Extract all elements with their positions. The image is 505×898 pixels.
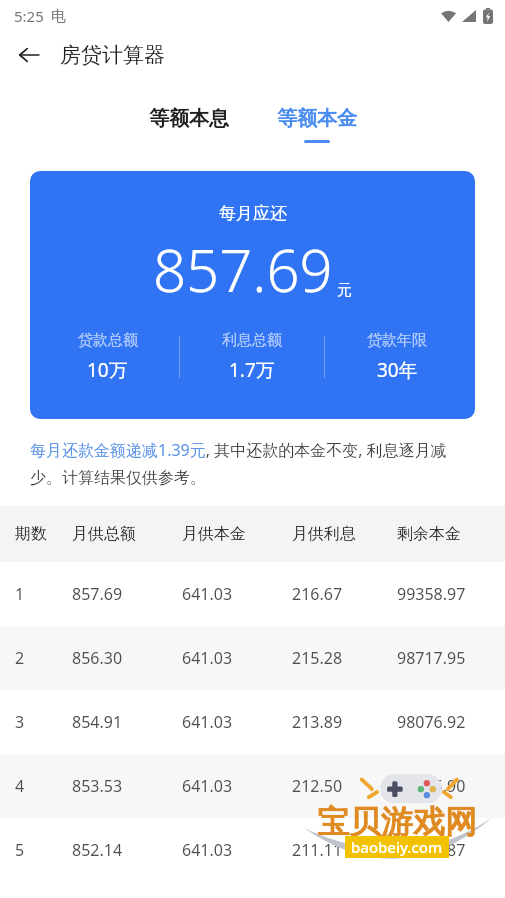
staticText: 贷款年限 [367, 331, 427, 350]
staticText: 212.50 [292, 775, 397, 797]
staticText: 857.69 [153, 230, 333, 309]
staticText: 99358.97 [397, 583, 505, 605]
staticText: 1.7万 [229, 357, 275, 383]
staticText: 电 [51, 7, 66, 26]
staticText: baobeiy.com [351, 837, 443, 857]
staticText: 房贷计算器 [60, 42, 165, 68]
staticText: 10万 [87, 357, 128, 383]
staticText: 月供利息 [292, 524, 397, 544]
staticText: 30年 [377, 357, 418, 383]
staticText: 856.30 [72, 647, 182, 669]
staticText: 98717.95 [397, 647, 505, 669]
staticText: 213.89 [292, 711, 397, 733]
button[interactable]: 等额本息 [141, 104, 237, 145]
button[interactable]: 4 [0, 754, 505, 818]
staticText: 211.11 [292, 839, 397, 861]
staticText: 5:25 [14, 6, 44, 26]
staticText: 98076.92 [397, 711, 505, 733]
staticText: 2 [15, 647, 72, 669]
staticText: 641.03 [182, 711, 292, 733]
button[interactable]: 等额本金 [269, 104, 365, 145]
button[interactable]: 每月应还 [30, 171, 475, 419]
button[interactable]: Back [8, 34, 50, 76]
staticText: 3 [15, 711, 72, 733]
staticText: 641.03 [182, 775, 292, 797]
staticText: 等额本金 [277, 106, 357, 131]
staticText: 216.67 [292, 583, 397, 605]
staticText: 每月还款金额递减1.39元, 其中还款的本金不变, 利息逐月减少。计算结果仅供参… [30, 439, 475, 488]
staticText: 641.03 [182, 647, 292, 669]
button[interactable]: 2 [0, 626, 505, 690]
staticText: 853.53 [72, 775, 182, 797]
staticText: 贷款总额 [78, 331, 138, 350]
staticText: 857.69 [72, 583, 182, 605]
staticText: 剩余本金 [397, 524, 505, 544]
button[interactable]: 5 [0, 818, 505, 882]
staticText: 4 [15, 775, 72, 797]
staticText: 等额本息 [149, 106, 229, 131]
staticText: 期数 [15, 524, 72, 544]
staticText: 854.91 [72, 711, 182, 733]
staticText: 852.14 [72, 839, 182, 861]
staticText: 97435.90 [397, 775, 505, 797]
staticText: 641.03 [182, 583, 292, 605]
staticText: 5 [15, 839, 72, 861]
staticText: 1 [15, 583, 72, 605]
staticText: 96794.87 [397, 839, 505, 861]
staticText: 641.03 [182, 839, 292, 861]
button[interactable]: 1 [0, 562, 505, 626]
staticText: 215.28 [292, 647, 397, 669]
staticText: 月供总额 [72, 524, 182, 544]
staticText: 月供本金 [182, 524, 292, 544]
staticText: 每月应还 [219, 203, 287, 224]
staticText: 宝贝游戏网 [317, 802, 477, 842]
button[interactable]: 3 [0, 690, 505, 754]
staticText: 元 [337, 281, 352, 300]
staticText: 利息总额 [222, 331, 282, 350]
